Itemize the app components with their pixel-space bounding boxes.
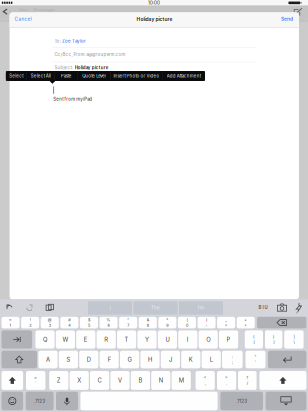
- button[interactable]: 1: [1, 317, 20, 328]
- button[interactable]: ,: [196, 371, 215, 390]
- button[interactable]: B: [131, 371, 150, 390]
- staticText: The: [151, 305, 160, 311]
- button[interactable]: Y: [137, 330, 157, 349]
- staticText: Holiday picture: [75, 65, 109, 70]
- button[interactable]: 6: [99, 317, 118, 328]
- button[interactable]: Return: [268, 351, 306, 368]
- button[interactable]: 7: [119, 317, 137, 328]
- button[interactable]: Cancel: [14, 15, 54, 22]
- button[interactable]: Shift: [1, 371, 23, 390]
- button[interactable]: Redo: [25, 303, 34, 311]
- staticText: ): [206, 318, 207, 322]
- button[interactable]: Select All: [27, 71, 55, 81]
- button[interactable]: K: [181, 351, 200, 368]
- button[interactable]: U: [158, 330, 177, 349]
- button[interactable]: Paste: [55, 71, 78, 81]
- staticText: !: [30, 318, 31, 322]
- button[interactable]: Insert photo: [277, 303, 287, 312]
- button[interactable]: Caps Lock: [1, 351, 37, 368]
- button[interactable]: Compose: [293, 8, 305, 16]
- button[interactable]: 8: [139, 317, 157, 328]
- button[interactable]: A: [38, 351, 58, 368]
- button[interactable]: W: [56, 330, 75, 349]
- button[interactable]: ;: [222, 351, 243, 368]
- button[interactable]: Dictation: [56, 392, 78, 410]
- button[interactable]: \: [284, 330, 304, 349]
- staticText: T: [125, 336, 129, 343]
- button[interactable]: Undo: [5, 303, 14, 311]
- button[interactable]: O: [199, 330, 218, 349]
- staticText: L: [210, 356, 213, 363]
- staticText: Cancel: [14, 16, 31, 22]
- button[interactable]: X: [70, 371, 89, 390]
- staticText: ~: [34, 375, 37, 380]
- button[interactable]: R: [97, 330, 116, 349]
- button[interactable]: Numbers: [26, 392, 54, 410]
- button[interactable]: C: [90, 371, 109, 390]
- button[interactable]: Text formatting: [258, 305, 267, 310]
- button[interactable]: Add attachment: [293, 303, 302, 312]
- button[interactable]: =: [217, 317, 235, 328]
- button[interactable]: Shift: [259, 371, 306, 390]
- button[interactable]: The: [133, 301, 177, 315]
- button[interactable]: 4: [60, 317, 78, 328]
- staticText: ]: [273, 340, 274, 344]
- button[interactable]: V: [110, 371, 130, 390]
- button[interactable]: Z: [49, 371, 68, 390]
- button[interactable]: Emoji: [1, 392, 23, 410]
- button[interactable]: 9: [158, 317, 176, 328]
- button[interactable]: 2: [21, 317, 39, 328]
- button[interactable]: 3: [41, 317, 59, 328]
- staticText: Select: [9, 73, 23, 79]
- staticText: S: [66, 356, 70, 363]
- button[interactable]: `: [26, 371, 45, 390]
- button[interactable]: Cc/Bcc, From: a@groupwm.com: [53, 47, 256, 62]
- button[interactable]: /: [238, 371, 257, 390]
- button[interactable]: 0: [178, 317, 196, 328]
- button[interactable]: H: [140, 351, 160, 368]
- button[interactable]: E: [76, 330, 95, 349]
- button[interactable]: Delete: [257, 317, 306, 328]
- staticText: Quote Level: [82, 73, 106, 79]
- button[interactable]: Q: [35, 330, 55, 349]
- button[interactable]: ': [245, 351, 265, 368]
- button[interactable]: ]: [265, 330, 282, 349]
- button[interactable]: Paste: [45, 303, 54, 311]
- button[interactable]: Quote Level: [78, 71, 110, 81]
- staticText: ?: [246, 375, 248, 380]
- button[interactable]: Numbers: [220, 392, 263, 410]
- button[interactable]: .: [217, 371, 236, 390]
- button[interactable]: Add Attachment: [162, 71, 205, 81]
- button[interactable]: L: [202, 351, 221, 368]
- button[interactable]: G: [120, 351, 139, 368]
- button[interactable]: [: [245, 330, 263, 349]
- button[interactable]: To:: [53, 35, 256, 47]
- button[interactable]: =: [237, 317, 255, 328]
- button[interactable]: Tab: [1, 330, 32, 349]
- staticText: 0: [186, 323, 188, 328]
- staticText: R: [104, 336, 108, 343]
- button[interactable]: 5: [80, 317, 98, 328]
- button[interactable]: S: [59, 351, 78, 368]
- button[interactable]: T: [117, 330, 136, 349]
- button[interactable]: Send: [266, 15, 293, 22]
- button[interactable]: I'm: [179, 301, 223, 315]
- staticText: K: [189, 356, 193, 363]
- button[interactable]: -: [197, 317, 216, 328]
- button[interactable]: Back: [2, 9, 8, 15]
- button[interactable]: Select: [6, 71, 27, 81]
- button[interactable]: N: [151, 371, 170, 390]
- button[interactable]: I: [178, 330, 197, 349]
- button[interactable]: Insert Photo or Video: [110, 71, 162, 81]
- button[interactable]: P: [219, 330, 238, 349]
- button[interactable]: Hide keyboard: [266, 392, 306, 410]
- button[interactable]: M: [172, 371, 191, 390]
- button[interactable]: D: [79, 351, 98, 368]
- button[interactable]: F: [100, 351, 119, 368]
- button[interactable]: Subject:: [53, 62, 256, 73]
- staticText: Z: [57, 377, 61, 384]
- staticText: $: [88, 318, 90, 322]
- button[interactable]: J: [161, 351, 180, 368]
